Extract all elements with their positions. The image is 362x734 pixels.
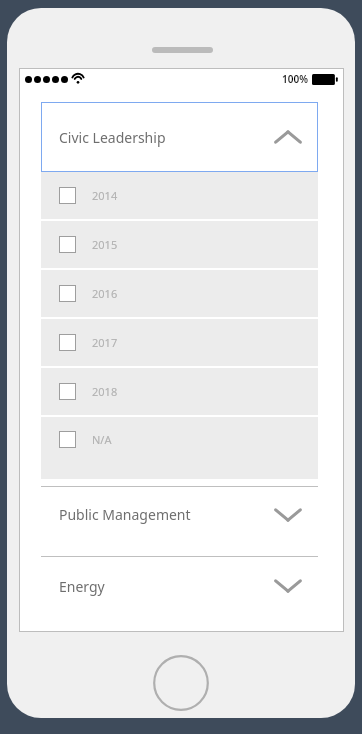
- button[interactable]: 2016: [41, 270, 318, 317]
- staticText: 2015: [92, 237, 118, 252]
- other: Home: [153, 655, 209, 711]
- staticText: 100%: [282, 72, 308, 86]
- button[interactable]: 2014: [41, 172, 318, 219]
- staticText: 2014: [92, 188, 118, 203]
- button[interactable]: N/A: [41, 417, 318, 479]
- other: Collapse: [274, 129, 302, 145]
- staticText: N/A: [92, 432, 112, 447]
- button[interactable]: 2017: [41, 319, 318, 366]
- button[interactable]: Public Management: [41, 487, 318, 556]
- button[interactable]: Civic Leadership: [41, 102, 318, 172]
- staticText: Energy: [59, 577, 105, 596]
- staticText: 2018: [92, 384, 118, 399]
- other: Expand: [274, 507, 302, 523]
- staticText: 2017: [92, 335, 118, 350]
- staticText: Public Management: [59, 505, 191, 524]
- button[interactable]: 2015: [41, 221, 318, 268]
- button[interactable]: Energy: [41, 557, 318, 597]
- other: Expand: [274, 578, 302, 594]
- staticText: Civic Leadership: [59, 128, 166, 147]
- staticText: 2016: [92, 286, 118, 301]
- button[interactable]: 2018: [41, 368, 318, 415]
